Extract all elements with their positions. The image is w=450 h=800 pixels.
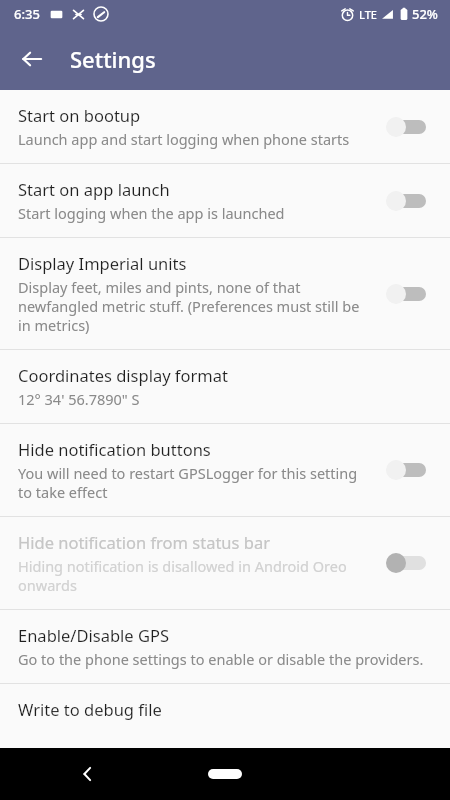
button[interactable]: Toggle <box>384 454 436 486</box>
staticText: Hide notification buttons <box>18 438 211 460</box>
button[interactable]: Display Imperial units <box>0 238 450 349</box>
staticText: Enable/Disable GPS <box>18 624 169 646</box>
staticText: 52% <box>412 5 438 23</box>
staticText: Settings <box>70 44 156 74</box>
staticText: Start on app launch <box>18 178 170 200</box>
staticText: Launch app and start logging when phone … <box>18 129 350 149</box>
button[interactable]: Start on bootup <box>0 90 450 163</box>
staticText: Start logging when the app is launched <box>18 203 285 223</box>
button[interactable]: Start on app launch <box>0 164 450 237</box>
button[interactable]: Toggle <box>384 278 436 310</box>
button[interactable]: Hide notification from status bar <box>0 517 450 609</box>
button[interactable]: Home <box>208 769 242 779</box>
staticText: Display feet, miles and pints, none of t… <box>18 277 374 335</box>
staticText: You will need to restart GPSLogger for t… <box>18 463 374 502</box>
staticText: Go to the phone settings to enable or di… <box>18 649 424 669</box>
button[interactable]: Toggle <box>384 547 436 579</box>
staticText: Write to debug file <box>18 698 162 720</box>
staticText: Hide notification from status bar <box>18 531 270 553</box>
button[interactable]: Write to debug file <box>0 684 450 734</box>
staticText: Coordinates display format <box>18 364 228 386</box>
button[interactable]: Coordinates display format <box>0 350 450 423</box>
button[interactable]: Toggle <box>384 111 436 143</box>
staticText: Hiding notification is disallowed in And… <box>18 556 374 595</box>
staticText: 12° 34' 56.7890" S <box>18 389 140 409</box>
staticText: 6:35 <box>14 5 40 23</box>
button[interactable]: Back <box>8 35 56 83</box>
staticText: Start on bootup <box>18 104 141 126</box>
button[interactable]: Back <box>70 756 106 792</box>
button[interactable]: Hide notification buttons <box>0 424 450 516</box>
button[interactable]: Toggle <box>384 185 436 217</box>
button[interactable]: Enable/Disable GPS <box>0 610 450 683</box>
staticText: LTE <box>359 7 377 22</box>
staticText: Display Imperial units <box>18 252 187 274</box>
